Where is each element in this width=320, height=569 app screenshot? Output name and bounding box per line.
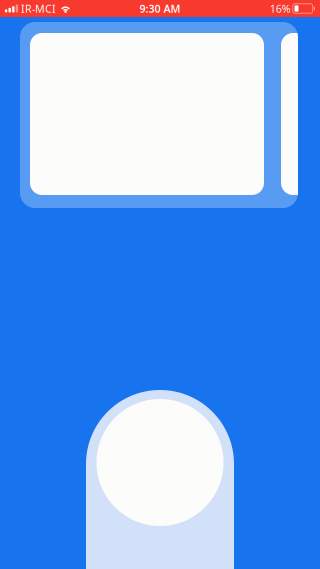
staticText: IR-MCI — [21, 1, 56, 16]
button[interactable]: Capture — [86, 390, 234, 569]
button[interactable]: Page 1 — [30, 33, 264, 195]
button[interactable]: Page 2 — [281, 33, 320, 195]
staticText: 9:30 AM — [139, 1, 180, 16]
staticText: 16% — [270, 1, 291, 16]
